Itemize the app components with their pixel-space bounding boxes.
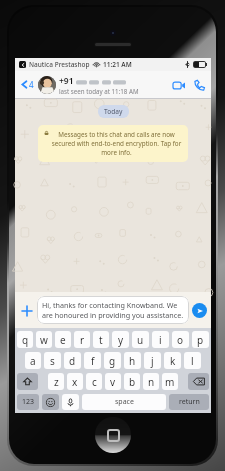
- staticText: f: [91, 354, 95, 368]
- button[interactable]: t: [93, 331, 109, 348]
- button[interactable]: c: [86, 373, 102, 390]
- staticText: n: [148, 375, 155, 389]
- button[interactable]: p: [192, 331, 209, 348]
- button[interactable]: l: [184, 352, 201, 369]
- staticText: h: [129, 354, 136, 368]
- staticText: return: [179, 397, 200, 407]
- staticText: 11:21 AM: [103, 60, 132, 69]
- button[interactable]: j: [144, 352, 161, 369]
- staticText: y: [118, 333, 124, 347]
- button[interactable]: Video call: [171, 77, 187, 93]
- staticText: t: [99, 333, 103, 347]
- button[interactable]: m: [162, 373, 178, 390]
- button[interactable]: i: [152, 331, 169, 348]
- button[interactable]: b: [124, 373, 140, 390]
- staticText: Messages to this chat and calls are now …: [51, 130, 182, 157]
- staticText: 123: [22, 397, 35, 407]
- staticText: last seen today at 11:18 AM: [59, 87, 139, 95]
- staticText: m: [165, 375, 175, 389]
- button[interactable]: v: [105, 373, 121, 390]
- staticText: l: [191, 354, 194, 368]
- button[interactable]: Messages to this chat and calls are now …: [38, 125, 188, 162]
- button[interactable]: a: [25, 352, 41, 369]
- staticText: p: [197, 333, 204, 347]
- staticText: r: [80, 333, 85, 347]
- staticText: a: [30, 354, 36, 368]
- button[interactable]: Dictate: [62, 394, 79, 410]
- button[interactable]: u: [132, 331, 149, 348]
- button[interactable]: w: [36, 331, 52, 348]
- button[interactable]: Back, 4 unread: [19, 79, 35, 90]
- button[interactable]: Send: [192, 303, 207, 318]
- staticText: s: [50, 354, 55, 368]
- button[interactable]: Hi, thanks for contacting Knowband. We a…: [37, 296, 189, 324]
- staticText: Hi, thanks for contacting Knowband. We a…: [42, 300, 184, 320]
- staticText: space: [115, 397, 134, 407]
- button[interactable]: d: [64, 352, 81, 369]
- button[interactable]: r: [74, 331, 90, 348]
- button[interactable]: Keyboard key: [188, 373, 209, 390]
- button[interactable]: s: [44, 352, 61, 369]
- button[interactable]: Emoji: [42, 394, 59, 410]
- button[interactable]: z: [48, 373, 64, 390]
- button[interactable]: n: [143, 373, 159, 390]
- staticText: Nautica Prestashop: [29, 60, 90, 69]
- staticText: j: [151, 354, 154, 368]
- button[interactable]: +91: [59, 75, 171, 95]
- button[interactable]: k: [164, 352, 181, 369]
- staticText: Today: [104, 107, 123, 116]
- button[interactable]: return: [169, 394, 209, 410]
- button[interactable]: Attach: [19, 303, 34, 318]
- button[interactable]: h: [124, 352, 141, 369]
- button[interactable]: 123: [17, 394, 39, 410]
- staticText: +91: [59, 75, 74, 87]
- staticText: b: [129, 375, 136, 389]
- staticText: g: [109, 354, 116, 368]
- button[interactable]: Keyboard key: [17, 373, 38, 390]
- button[interactable]: x: [67, 373, 83, 390]
- staticText: 4: [29, 79, 34, 90]
- staticText: e: [60, 333, 66, 347]
- button[interactable]: o: [172, 331, 189, 348]
- button[interactable]: q: [17, 331, 33, 348]
- staticText: v: [110, 375, 116, 389]
- button[interactable]: Voice call: [191, 77, 207, 93]
- staticText: q: [22, 333, 29, 347]
- button[interactable]: f: [84, 352, 101, 369]
- button[interactable]: e: [55, 331, 71, 348]
- staticText: k: [170, 354, 176, 368]
- staticText: z: [54, 375, 59, 389]
- button[interactable]: space: [82, 394, 166, 410]
- staticText: x: [72, 375, 78, 389]
- button[interactable]: Contact avatar: [38, 76, 56, 94]
- staticText: d: [69, 354, 76, 368]
- staticText: c: [92, 375, 97, 389]
- staticText: u: [137, 333, 144, 347]
- button[interactable]: y: [112, 331, 129, 348]
- staticText: w: [40, 333, 48, 347]
- staticText: i: [159, 333, 162, 347]
- staticText: o: [177, 333, 184, 347]
- button[interactable]: g: [104, 352, 121, 369]
